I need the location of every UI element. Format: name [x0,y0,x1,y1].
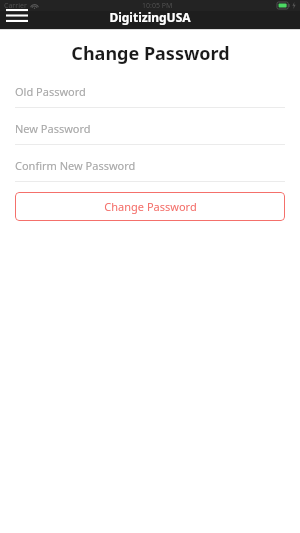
button[interactable]: Confirm New Password [15,158,136,173]
button[interactable]: Old Password [15,84,86,99]
button[interactable]: Open navigation menu [4,6,30,24]
button[interactable]: New Password [15,121,91,136]
staticText: Change Password [71,41,230,66]
staticText: Carrier [4,1,27,11]
staticText: 10:05 PM [142,1,173,11]
button[interactable]: Change Password [15,192,285,221]
staticText: DigitizingUSA [109,9,191,25]
staticText: Change Password [104,199,197,214]
